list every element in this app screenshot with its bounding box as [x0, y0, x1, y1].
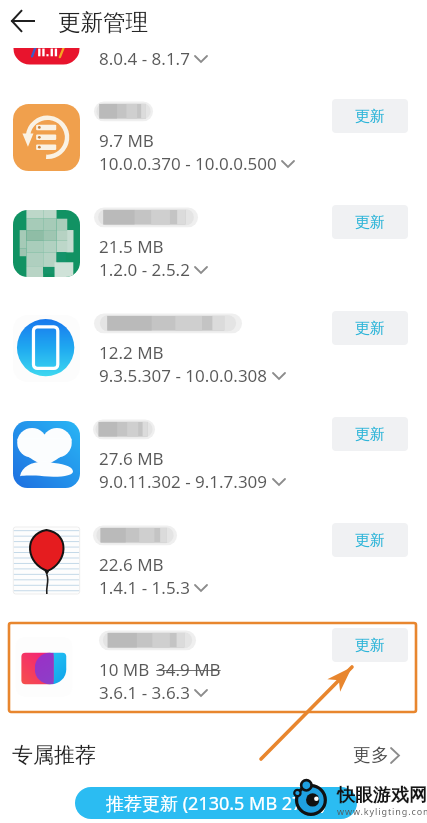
button[interactable]: Back [0, 0, 44, 42]
staticText: 更新 [355, 636, 385, 655]
staticText: 9.7 MB [99, 129, 154, 152]
staticText: 更新 [355, 425, 385, 444]
staticText: 10.0.0.370 - 10.0.0.500 [99, 152, 277, 175]
staticText: 快眼游戏网 [337, 784, 427, 807]
staticText: 更新 [355, 319, 385, 338]
staticText: 1.2.0 - 2.5.2 [99, 258, 190, 281]
button[interactable] [13, 527, 80, 594]
button[interactable] [13, 0, 80, 65]
button[interactable] [13, 421, 80, 488]
button[interactable]: 更新 [332, 99, 408, 133]
staticText: 更新管理 [58, 8, 148, 36]
button[interactable]: 推荐更新 (2130.5 MB 27条) [75, 787, 357, 819]
button[interactable] [13, 633, 80, 700]
staticText: 8.0.4 - 8.1.7 [99, 47, 190, 70]
button[interactable]: 更新 [332, 205, 408, 239]
staticText: 27.6 MB [99, 447, 164, 470]
staticText: 9.3.5.307 - 10.0.0.308 [99, 364, 268, 387]
staticText: 更新 [355, 531, 385, 550]
button[interactable] [13, 315, 80, 382]
staticText: 专属推荐 [12, 742, 96, 768]
staticText: 22.6 MB [99, 553, 164, 576]
staticText: 12.2 MB [99, 341, 164, 364]
staticText: 更新 [355, 107, 385, 126]
button[interactable] [13, 210, 80, 277]
button[interactable]: 更新 [332, 311, 408, 345]
staticText: www.kyligting.com [337, 805, 427, 817]
staticText: 9.0.11.302 - 9.1.7.309 [99, 470, 268, 493]
button[interactable]: 专属推荐 [4, 734, 114, 776]
staticText: 3.6.1 - 3.6.3 [99, 681, 190, 704]
button[interactable]: 更新 [332, 628, 408, 662]
staticText: 1.4.1 - 1.5.3 [99, 576, 190, 599]
staticText: 更多 [353, 744, 389, 767]
staticText: 推荐更新 (2130.5 MB 27条) [106, 791, 326, 816]
button[interactable]: 更新 [332, 417, 408, 451]
button[interactable] [13, 104, 80, 171]
staticText: 更新 [355, 213, 385, 232]
button[interactable]: 更多 [348, 734, 406, 776]
staticText: 10 MB [99, 658, 150, 681]
staticText: 34.9 MB [156, 658, 221, 681]
staticText: 21.5 MB [99, 235, 164, 258]
button[interactable]: 更新 [332, 523, 408, 557]
